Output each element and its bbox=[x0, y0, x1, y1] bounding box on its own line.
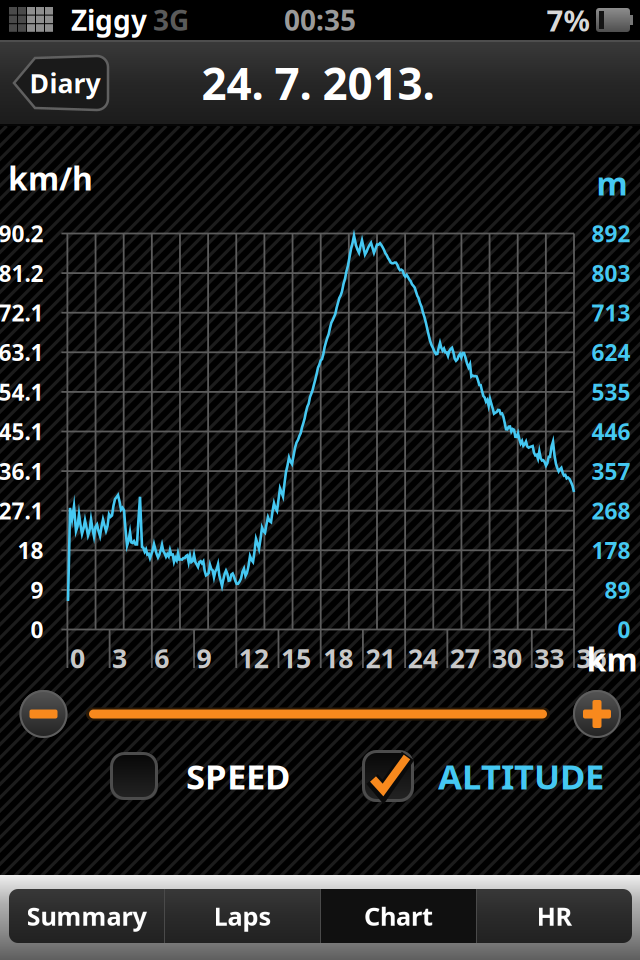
staticText: 21 bbox=[365, 640, 395, 676]
button[interactable]: Zoom out bbox=[19, 690, 67, 738]
staticText: 63.1 bbox=[0, 337, 43, 367]
staticText: 24. 7. 2013. bbox=[201, 54, 434, 112]
staticText: 89 bbox=[604, 575, 630, 605]
staticText: 0 bbox=[30, 614, 43, 644]
staticText: 3G bbox=[153, 1, 189, 39]
staticText: 357 bbox=[591, 456, 630, 486]
staticText: SPEED bbox=[186, 753, 290, 799]
staticText: 7% bbox=[546, 0, 589, 39]
staticText: 0 bbox=[70, 640, 85, 676]
staticText: 24 bbox=[408, 640, 438, 676]
staticText: 27 bbox=[450, 640, 480, 676]
button[interactable]: Zoom in bbox=[573, 690, 621, 738]
staticText: 18 bbox=[17, 535, 43, 565]
staticText: 12 bbox=[239, 640, 269, 676]
staticText: 18 bbox=[323, 640, 353, 676]
staticText: 0 bbox=[617, 614, 630, 644]
staticText: 535 bbox=[591, 377, 630, 407]
staticText: 30 bbox=[492, 640, 522, 676]
staticText: 72.1 bbox=[0, 298, 43, 328]
button[interactable]: HR bbox=[477, 889, 632, 943]
staticText: 15 bbox=[281, 640, 311, 676]
staticText: km bbox=[586, 638, 637, 680]
button[interactable]: ALTITUDE bbox=[362, 750, 604, 802]
staticText: Laps bbox=[213, 899, 271, 933]
staticText: 892 bbox=[591, 218, 630, 248]
staticText: Ziggy bbox=[71, 1, 147, 39]
button[interactable]: Chart bbox=[321, 889, 476, 943]
button[interactable]: Summary bbox=[9, 889, 164, 943]
staticText: 178 bbox=[591, 535, 630, 565]
staticText: Diary bbox=[29, 65, 100, 101]
staticText: Summary bbox=[26, 899, 146, 933]
staticText: 3 bbox=[112, 640, 127, 676]
staticText: 00:35 bbox=[284, 1, 356, 39]
staticText: 90.2 bbox=[0, 218, 43, 248]
staticText: 45.1 bbox=[0, 416, 43, 446]
staticText: 36 bbox=[576, 640, 606, 676]
staticText: Chart bbox=[364, 899, 433, 933]
staticText: 803 bbox=[591, 258, 630, 288]
staticText: m bbox=[596, 162, 627, 204]
button[interactable]: SPEED bbox=[110, 752, 290, 800]
staticText: 9 bbox=[197, 640, 212, 676]
staticText: 81.2 bbox=[0, 258, 43, 288]
staticText: HR bbox=[536, 899, 572, 933]
staticText: km/h bbox=[8, 157, 93, 199]
staticText: 27.1 bbox=[0, 496, 43, 526]
staticText: 713 bbox=[591, 298, 630, 328]
staticText: 33 bbox=[534, 640, 564, 676]
staticText: 446 bbox=[591, 416, 630, 446]
staticText: 624 bbox=[591, 337, 630, 367]
staticText: ALTITUDE bbox=[438, 753, 604, 799]
staticText: 54.1 bbox=[0, 377, 43, 407]
button[interactable]: Back to Diary bbox=[12, 54, 110, 112]
staticText: 36.1 bbox=[0, 456, 43, 486]
staticText: 268 bbox=[591, 496, 630, 526]
button[interactable]: Chart zoom slider bbox=[86, 707, 550, 721]
staticText: 9 bbox=[30, 575, 43, 605]
staticText: 6 bbox=[154, 640, 169, 676]
button[interactable]: Laps bbox=[165, 889, 320, 943]
